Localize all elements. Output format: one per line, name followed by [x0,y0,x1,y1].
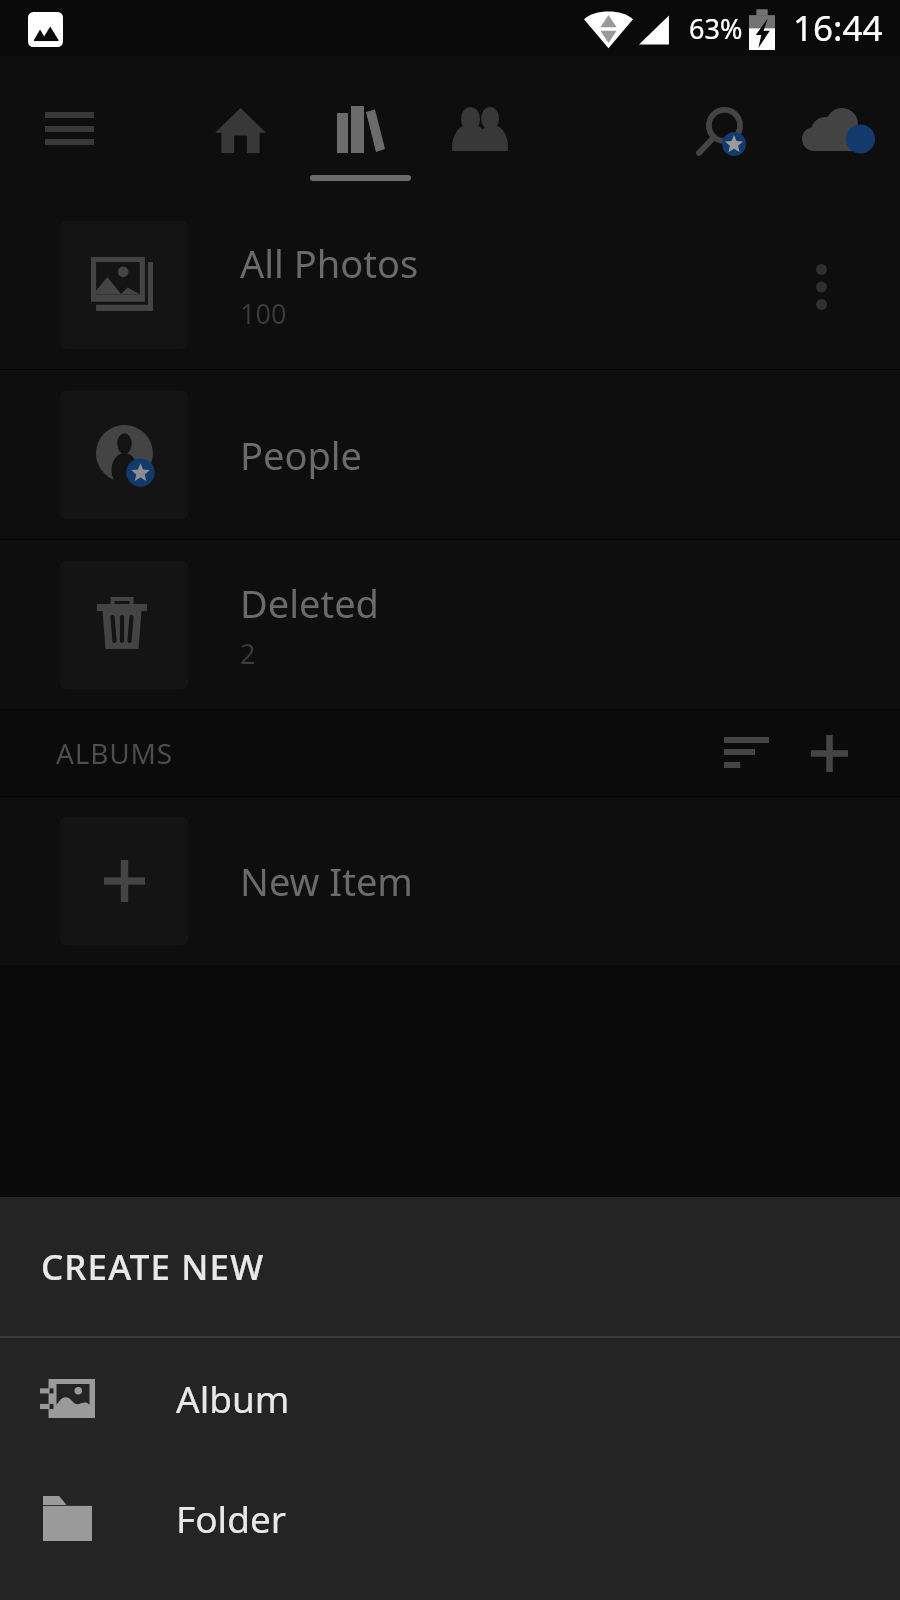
staticText: All Photos [240,237,419,289]
button[interactable]: New Item [0,797,900,965]
button[interactable]: All Photos [0,200,900,369]
staticText: 2 [240,635,256,672]
staticText: 63% [689,10,743,47]
button[interactable]: People [0,370,900,539]
button[interactable]: Search [660,56,780,200]
button[interactable]: More options [805,200,900,369]
button[interactable]: Menu [0,74,140,184]
button[interactable]: Sort [700,710,790,796]
staticText: Folder [176,1493,287,1543]
staticText: 16:44 [793,4,883,52]
staticText: People [240,429,363,481]
staticText: Deleted [240,577,379,629]
button[interactable]: People [412,73,552,183]
button[interactable]: Album [0,1338,900,1458]
staticText: 100 [240,295,287,332]
staticText: CREATE NEW [41,1243,265,1291]
button[interactable]: Deleted [0,540,900,709]
staticText: New Item [240,855,413,907]
button[interactable]: Home [167,73,313,183]
button[interactable]: Add album [785,710,875,796]
staticText: ALBUMS [56,734,173,772]
button[interactable]: Cloud [790,56,900,200]
staticText: Album [176,1373,290,1423]
button[interactable]: Library [313,73,407,183]
button[interactable]: Folder [0,1458,900,1578]
